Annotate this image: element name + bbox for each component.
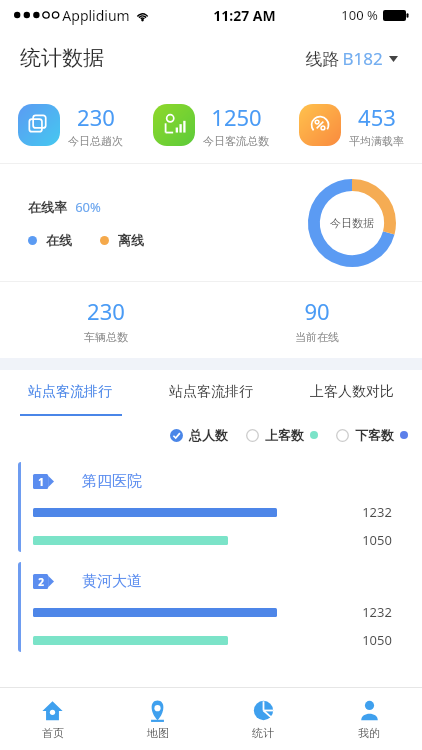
button[interactable]: 90 <box>211 282 422 358</box>
staticText: 上客人数对比 <box>310 383 394 401</box>
staticText: 今日客流总数 <box>203 134 269 148</box>
staticText: 线路 <box>303 47 342 70</box>
button[interactable]: 线路 <box>299 43 402 74</box>
button[interactable]: 上客数 <box>246 423 318 447</box>
button[interactable]: 我的 <box>316 688 422 750</box>
button[interactable]: 230 <box>0 86 140 163</box>
staticText: 今日数据 <box>330 216 374 230</box>
staticText: 总人数 <box>189 427 228 443</box>
staticText: 在线 <box>46 232 72 248</box>
staticText: 平均满载率 <box>349 134 404 148</box>
button[interactable]: 上客人数对比 <box>281 370 422 414</box>
staticText: 2 <box>38 575 44 589</box>
staticText: 离线 <box>118 232 144 248</box>
staticText: B182 <box>342 47 383 70</box>
button[interactable]: 下客数 <box>336 423 408 447</box>
staticText: 453 <box>358 102 396 132</box>
staticText: 230 <box>77 102 115 132</box>
staticText: 统计数据 <box>20 45 104 71</box>
button[interactable]: 站点客流排行 <box>140 370 281 414</box>
button[interactable]: 1250 <box>140 86 281 163</box>
staticText: 在线率 <box>28 199 67 215</box>
button[interactable]: 首页 <box>0 688 105 750</box>
staticText: 90 <box>304 296 330 326</box>
staticText: 统计 <box>252 726 274 740</box>
staticText: 车辆总数 <box>84 330 128 344</box>
staticText: 60% <box>75 198 101 216</box>
staticText: 首页 <box>42 726 64 740</box>
staticText: 地图 <box>147 726 169 740</box>
button[interactable]: 2 <box>18 562 404 652</box>
button[interactable]: 总人数 <box>170 423 228 447</box>
staticText: 上客数 <box>265 427 304 443</box>
staticText: 1050 <box>362 531 392 549</box>
button[interactable]: 地图 <box>105 688 210 750</box>
staticText: 今日总趟次 <box>68 134 123 148</box>
staticText: 站点客流排行 <box>28 383 112 401</box>
button[interactable]: 统计 <box>210 688 316 750</box>
staticText: 黄河大道 <box>82 572 142 591</box>
staticText: 1232 <box>362 603 392 621</box>
staticText: 11:27 AM <box>213 6 276 25</box>
staticText: 1232 <box>362 503 392 521</box>
staticText: 1 <box>38 475 44 489</box>
staticText: 1250 <box>211 102 262 132</box>
staticText: 230 <box>87 296 125 326</box>
staticText: Applidium <box>62 6 130 25</box>
button[interactable]: 站点客流排行 <box>0 370 140 414</box>
button[interactable]: 230 <box>0 282 211 358</box>
staticText: 第四医院 <box>82 472 142 491</box>
staticText: 100 % <box>341 6 378 24</box>
button[interactable]: 453 <box>281 86 422 163</box>
staticText: 下客数 <box>355 427 394 443</box>
staticText: 我的 <box>358 726 380 740</box>
staticText: 当前在线 <box>295 330 339 344</box>
button[interactable]: 1 <box>18 462 404 552</box>
staticText: 站点客流排行 <box>169 383 253 401</box>
staticText: 1050 <box>362 631 392 649</box>
